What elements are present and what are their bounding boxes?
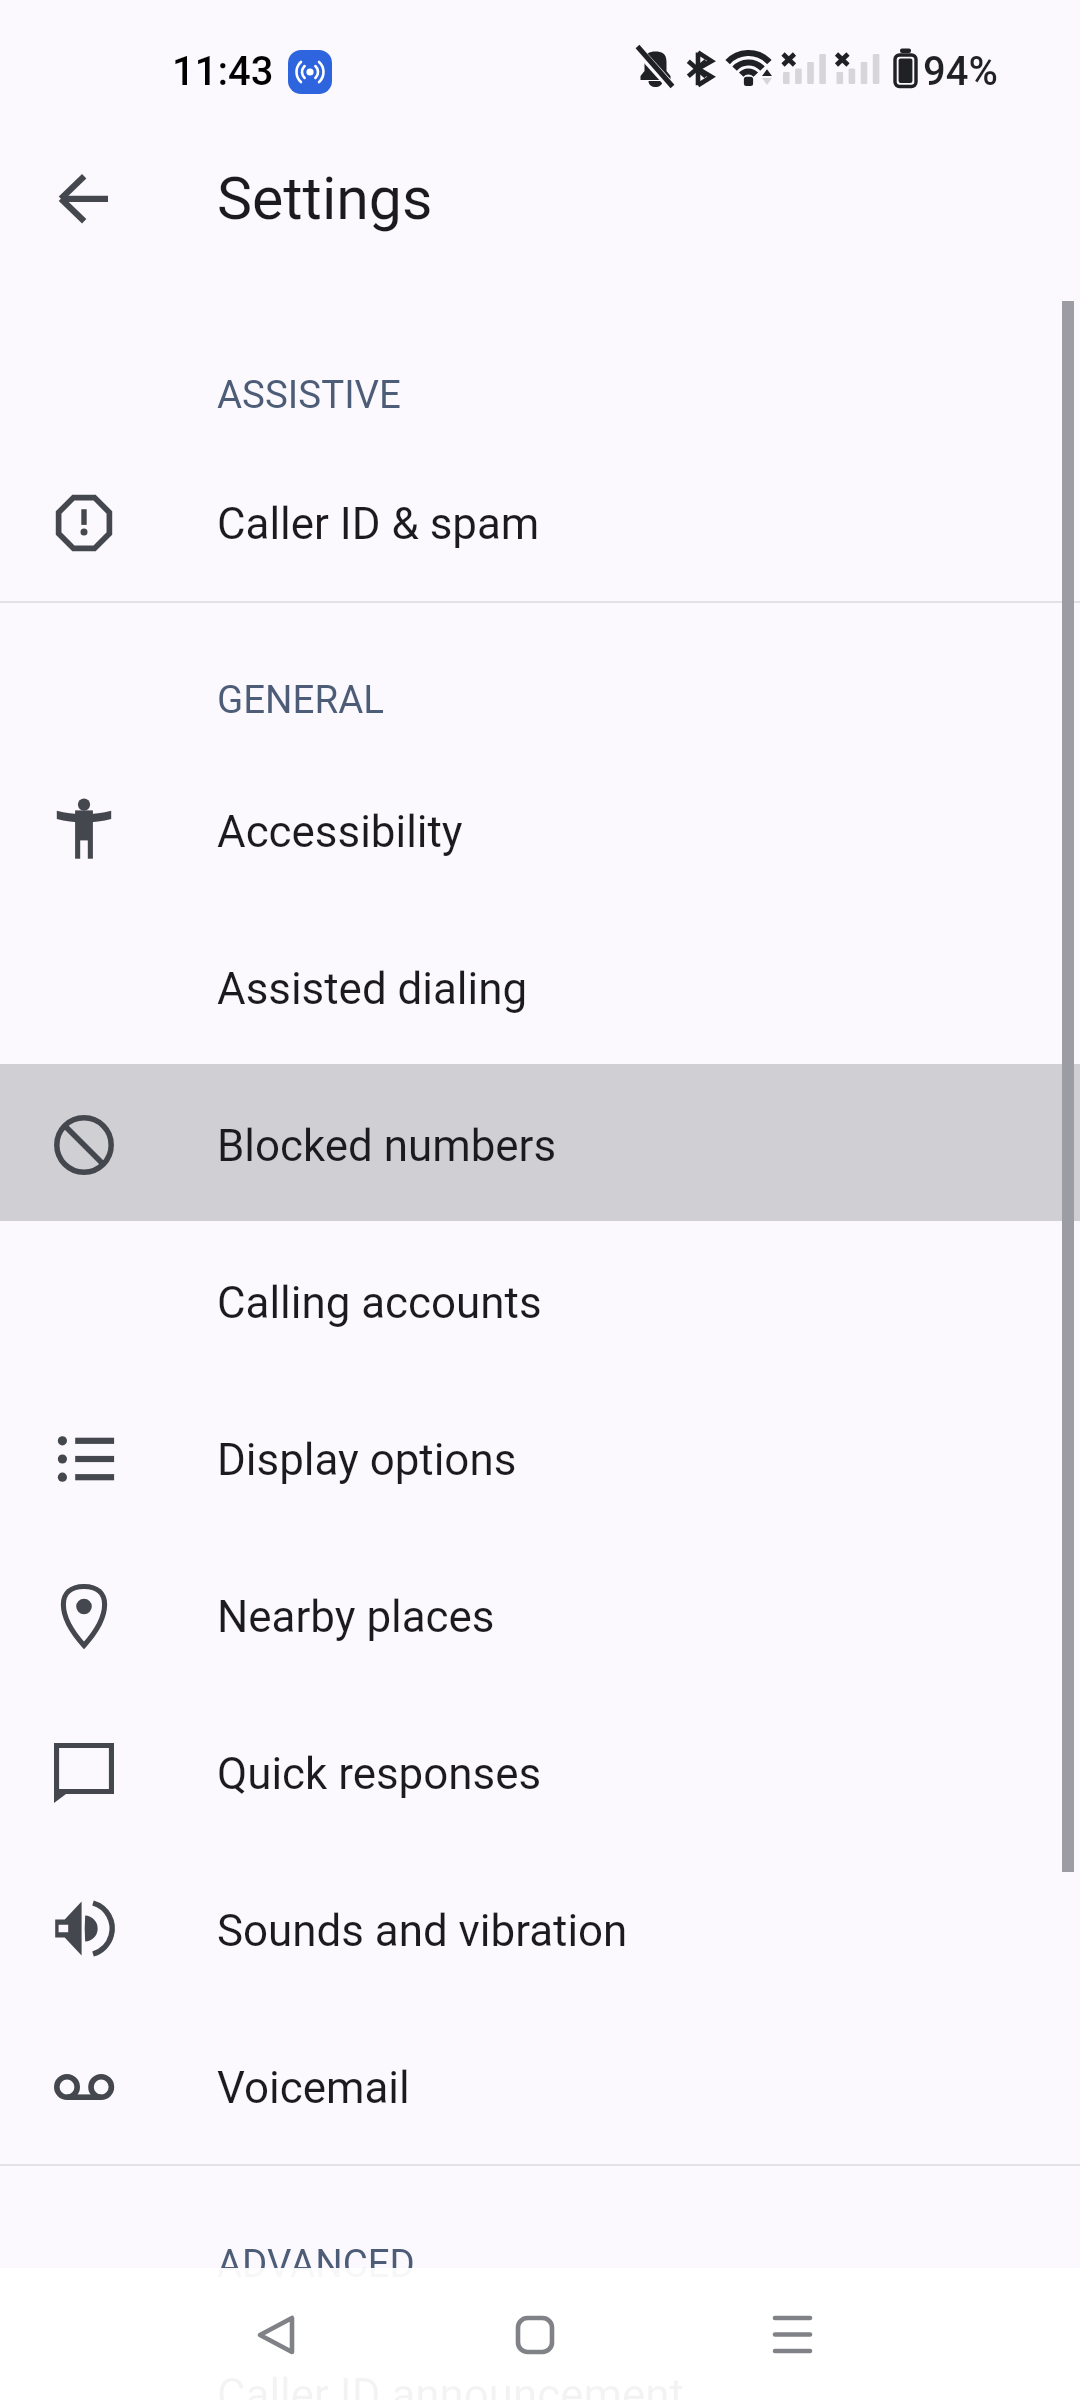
button[interactable]: Back (42, 156, 126, 240)
staticText: Caller ID & spam (217, 498, 540, 549)
staticText: ADVANCED (217, 2241, 415, 2286)
button[interactable]: Caller ID announcement (0, 2315, 1080, 2400)
staticText: Calling accounts (217, 1277, 542, 1328)
staticText: Settings (217, 164, 433, 233)
button[interactable]: Caller ID & spam (0, 444, 1080, 601)
staticText: Voicemail (217, 2062, 410, 2113)
staticText: Blocked numbers (217, 1120, 557, 1171)
staticText: ASSISTIVE (217, 372, 402, 417)
button[interactable]: Nearby places (0, 1537, 1080, 1694)
button[interactable]: Back (216, 2275, 336, 2395)
button[interactable]: Calling accounts (0, 1223, 1080, 1380)
staticText: Caller ID announcement (217, 2369, 684, 2400)
staticText: Sounds and vibration (217, 1905, 628, 1956)
button[interactable]: Display options (0, 1380, 1080, 1537)
staticText: Quick responses (217, 1748, 542, 1799)
button[interactable]: Accessibility (0, 752, 1080, 909)
staticText: Display options (217, 1434, 517, 1485)
staticText: Assisted dialing (217, 963, 528, 1014)
staticText: Accessibility (217, 806, 463, 857)
button[interactable]: Blocked numbers (0, 1066, 1080, 1223)
staticText: GENERAL (217, 677, 385, 722)
button[interactable]: Assisted dialing (0, 909, 1080, 1066)
staticText: Nearby places (217, 1591, 495, 1642)
staticText: 94% (923, 48, 998, 95)
button[interactable]: Quick responses (0, 1694, 1080, 1851)
button[interactable]: Sounds and vibration (0, 1851, 1080, 2008)
button[interactable]: Home (475, 2275, 595, 2395)
button[interactable]: Recent apps (733, 2275, 853, 2395)
staticText: 11:43 (172, 48, 274, 95)
button[interactable]: Voicemail (0, 2008, 1080, 2165)
